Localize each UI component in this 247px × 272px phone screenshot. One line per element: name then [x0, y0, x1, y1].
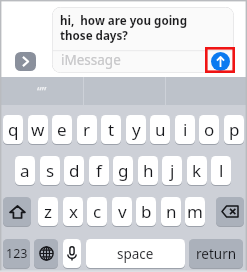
staticText: j [170, 159, 175, 182]
button[interactable]: k [187, 156, 207, 185]
button[interactable]: d [64, 156, 84, 185]
staticText: u [155, 118, 166, 141]
button[interactable]: o [199, 115, 219, 144]
button[interactable]: l [211, 156, 231, 185]
button[interactable]: m [185, 197, 205, 226]
button[interactable]: r [77, 115, 97, 144]
staticText: y [132, 118, 141, 141]
staticText: n [166, 200, 177, 223]
button[interactable]: f [89, 156, 109, 185]
staticText: p [229, 118, 240, 141]
staticText: h [143, 159, 154, 182]
button[interactable]: Backspace [216, 197, 244, 226]
staticText: f [96, 159, 102, 182]
button[interactable]: z [38, 197, 58, 226]
staticText: a [20, 159, 30, 182]
staticText: z [44, 200, 52, 223]
staticText: s [46, 159, 55, 182]
button[interactable]: 123 [3, 239, 30, 268]
button[interactable]: Dictate [63, 239, 81, 268]
staticText: g [118, 159, 129, 182]
button[interactable]: c [87, 197, 107, 226]
button[interactable]: p [224, 115, 244, 144]
staticText: m [187, 200, 203, 223]
staticText: t [108, 118, 115, 141]
staticText: c [93, 200, 102, 223]
button[interactable]: More apps [15, 52, 36, 71]
button[interactable]: v [112, 197, 132, 226]
button[interactable]: h [138, 156, 158, 185]
staticText: v [118, 200, 127, 223]
button[interactable]: s [40, 156, 60, 185]
staticText: hi, how are you going [60, 13, 187, 29]
staticText: o [204, 118, 215, 141]
staticText: space [117, 245, 154, 263]
button[interactable]: b [136, 197, 156, 226]
staticText: q [8, 118, 19, 141]
staticText: b [141, 200, 152, 223]
staticText: iMessage [61, 51, 121, 69]
staticText: w [31, 118, 45, 141]
button[interactable]: t [101, 115, 121, 144]
button[interactable]: e [52, 115, 72, 144]
staticText: x [69, 200, 78, 223]
button[interactable]: Shift [3, 197, 31, 226]
button[interactable]: return [189, 239, 243, 268]
button[interactable]: y [126, 115, 146, 144]
button[interactable]: i [175, 115, 195, 144]
button[interactable]: a [15, 156, 35, 185]
button[interactable]: n [161, 197, 181, 226]
staticText: “” [37, 82, 47, 100]
button[interactable]: space [86, 239, 185, 268]
button[interactable]: Switch keyboard [34, 239, 58, 268]
staticText: r [83, 118, 91, 141]
staticText: return [196, 245, 237, 263]
button[interactable]: u [150, 115, 170, 144]
staticText: i [183, 118, 188, 141]
button[interactable]: w [28, 115, 48, 144]
button[interactable]: Send [211, 52, 230, 71]
button[interactable]: q [3, 115, 23, 144]
staticText: those days? [60, 28, 128, 44]
staticText: d [69, 159, 80, 182]
staticText: e [57, 118, 67, 141]
button[interactable]: x [63, 197, 83, 226]
button[interactable]: “” [0, 77, 83, 105]
button[interactable]: hi, how are you going [52, 7, 234, 73]
button[interactable]: g [113, 156, 133, 185]
button[interactable]: j [162, 156, 182, 185]
staticText: 123 [6, 245, 28, 262]
staticText: k [192, 159, 202, 182]
staticText: l [219, 159, 224, 182]
